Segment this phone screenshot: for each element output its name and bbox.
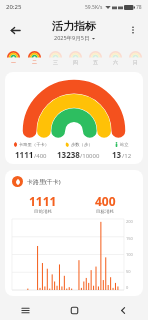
button[interactable]: 二 bbox=[24, 46, 45, 68]
button[interactable]: 步数（步） bbox=[54, 138, 103, 164]
staticText: 二 bbox=[32, 59, 37, 65]
button[interactable]: 日 bbox=[125, 46, 145, 68]
button[interactable]: More options bbox=[122, 19, 144, 41]
staticText: 站立 bbox=[120, 142, 129, 147]
button[interactable]: 三 bbox=[45, 46, 65, 68]
staticText: /400 bbox=[34, 152, 47, 160]
staticText: 卡路里(千卡) bbox=[27, 178, 61, 186]
button[interactable]: 卡路里（千卡） bbox=[5, 72, 143, 164]
staticText: 四 bbox=[73, 59, 78, 65]
staticText: 0 bbox=[126, 285, 129, 290]
staticText: 150 bbox=[126, 236, 133, 241]
staticText: 59.5K/s bbox=[85, 4, 103, 11]
staticText: 日 bbox=[133, 59, 138, 65]
button[interactable]: 一 bbox=[3, 46, 24, 68]
staticText: 五 bbox=[93, 59, 98, 65]
button[interactable]: Home bbox=[50, 300, 99, 320]
staticText: 200 bbox=[126, 219, 133, 224]
button[interactable]: 六 bbox=[105, 46, 125, 68]
staticText: 1111 bbox=[15, 149, 34, 160]
staticText: 100 bbox=[126, 252, 133, 257]
button[interactable]: 站立 bbox=[103, 138, 140, 164]
button[interactable]: Back bbox=[4, 19, 26, 41]
button[interactable]: 四 bbox=[65, 46, 85, 68]
button[interactable]: 卡路里（千卡） bbox=[8, 138, 54, 164]
staticText: 50 bbox=[126, 269, 131, 274]
button[interactable]: 卡路里(千卡) bbox=[5, 170, 143, 296]
staticText: 13238 bbox=[57, 149, 80, 160]
staticText: 1111 bbox=[29, 193, 57, 209]
button[interactable]: 五 bbox=[85, 46, 105, 68]
staticText: 目标消耗 bbox=[96, 209, 114, 215]
staticText: 三 bbox=[53, 59, 58, 65]
button[interactable]: Back bbox=[99, 300, 148, 320]
staticText: 400 bbox=[95, 193, 116, 209]
button[interactable]: 2025年9月5日 bbox=[54, 34, 95, 42]
staticText: 卡路里（千卡） bbox=[19, 142, 50, 147]
staticText: 一 bbox=[11, 59, 16, 65]
staticText: 目前消耗 bbox=[34, 209, 52, 215]
staticText: 2025年9月5日 bbox=[54, 34, 90, 42]
staticText: 78 bbox=[136, 4, 142, 11]
staticText: /12 bbox=[122, 152, 132, 160]
staticText: 活力指标 bbox=[52, 19, 96, 33]
staticText: 六 bbox=[113, 59, 118, 65]
staticText: /10000 bbox=[80, 152, 100, 160]
staticText: 步数（步） bbox=[71, 142, 93, 147]
staticText: 20:25 bbox=[6, 3, 22, 11]
button[interactable]: Recent apps bbox=[0, 300, 50, 320]
staticText: 13 bbox=[112, 149, 122, 160]
